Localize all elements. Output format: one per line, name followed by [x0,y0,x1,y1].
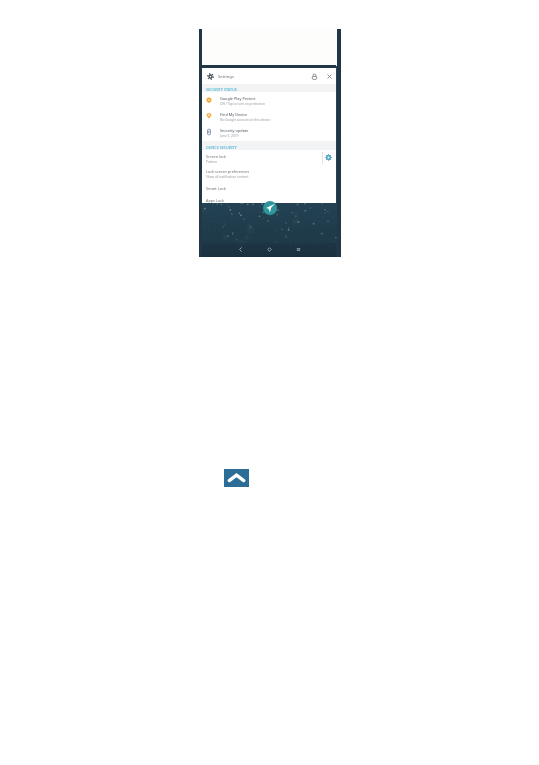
staticText: SECURITY STATUS [206,87,237,92]
staticText: Lock screen preferences [206,169,250,174]
button[interactable]: Security update [202,128,336,140]
staticText: Google Play Protect [220,96,256,101]
button[interactable]: Lock screen preferences [202,169,336,181]
staticText: Off / Tap to turn on protection [220,102,265,106]
button[interactable]: Scroll to top [224,469,249,487]
staticText: No Google account on this device [220,118,270,122]
staticText: Pattern [206,160,218,164]
button[interactable]: Home [265,245,274,254]
button[interactable]: Recents [294,245,303,254]
button[interactable]: Settings [207,73,214,80]
button[interactable]: Find My Device [202,112,336,124]
staticText: Smart Lock [206,186,226,191]
button[interactable]: Smart Lock [202,186,336,194]
staticText: Apps Lock [206,198,225,203]
button[interactable]: Close [326,73,333,80]
button[interactable]: Account [311,73,318,80]
staticText: Show all notification content [206,175,249,179]
button[interactable]: Screen lock [202,154,336,166]
staticText: Security update [220,128,249,133]
button[interactable]: Google Play Protect [202,96,336,108]
staticText: Screen lock [206,154,227,159]
button[interactable]: Screen lock settings [325,154,332,161]
staticText: June 5, 2019 [220,134,239,138]
button[interactable]: Back [236,245,245,254]
button[interactable]: Apps Lock [202,198,336,203]
staticText: DEVICE SECURITY [206,145,237,150]
button[interactable]: Send [263,201,277,215]
staticText: Settings [218,74,234,80]
staticText: Find My Device [220,112,248,117]
